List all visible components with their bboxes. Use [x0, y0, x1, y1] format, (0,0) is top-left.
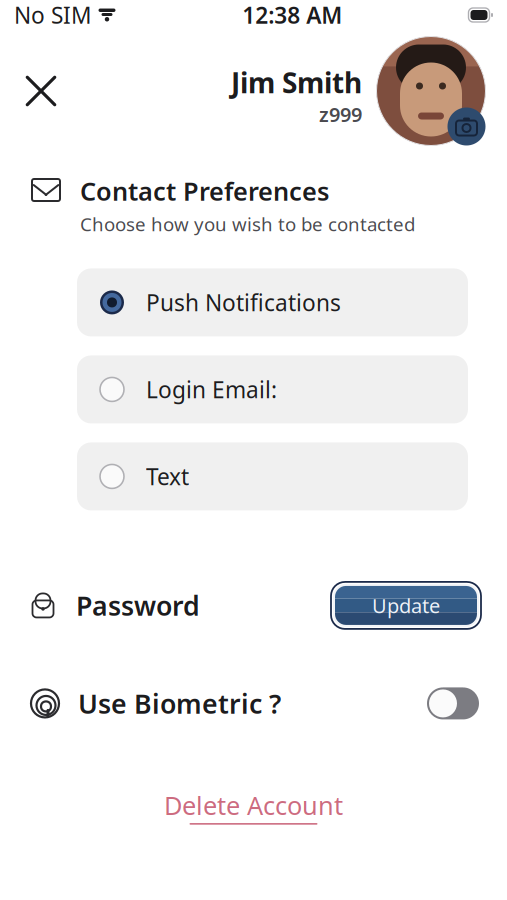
button[interactable]: Update [331, 582, 481, 629]
button[interactable]: Login Email: [77, 355, 468, 423]
staticText: Login Email: [146, 374, 277, 404]
staticText: Contact Preferences [80, 174, 329, 208]
button[interactable]: Close [18, 68, 64, 114]
staticText: No SIM [14, 0, 92, 30]
staticText: Use Biometric ? [78, 686, 281, 721]
button[interactable]: Text [77, 442, 468, 510]
button[interactable]: Push Notifications [77, 268, 468, 336]
staticText: Jim Smith [231, 64, 362, 101]
staticText: Push Notifications [146, 287, 341, 317]
staticText: Delete Account [164, 788, 343, 822]
button[interactable]: Use Biometric [427, 687, 479, 719]
staticText: Password [76, 588, 200, 623]
staticText: 12:38 AM [242, 0, 342, 30]
staticText: Choose how you wish to be contacted [80, 212, 415, 236]
staticText: Text [146, 461, 189, 491]
staticText: z999 [319, 101, 362, 127]
button[interactable]: Delete Account [154, 780, 353, 833]
staticText: Update [372, 592, 440, 619]
button[interactable]: Change profile photo [375, 35, 487, 147]
